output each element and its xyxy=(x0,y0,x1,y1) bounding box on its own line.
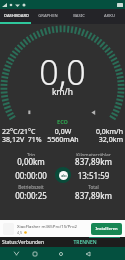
staticText: AKKU xyxy=(104,13,115,19)
staticText: Installieren xyxy=(95,226,118,232)
staticText: 0,0 xyxy=(39,49,86,95)
button[interactable]: AKKU xyxy=(94,9,125,22)
staticText: Total xyxy=(62,184,125,190)
button[interactable]: BASIC xyxy=(63,9,94,22)
staticText: TRENNEN xyxy=(73,239,97,246)
button[interactable]: Home xyxy=(53,247,69,260)
button[interactable]: Recent apps xyxy=(27,247,43,260)
staticText: 22°C/21°C xyxy=(2,127,43,135)
staticText: 5560mAh xyxy=(43,135,83,144)
button[interactable]: GRAPHEN xyxy=(32,9,63,22)
staticText: Trip xyxy=(0,152,62,156)
button[interactable]: DASHBOARD xyxy=(0,9,32,22)
staticText: km/h xyxy=(52,86,73,98)
staticText: 0,0km/h xyxy=(83,127,123,135)
button[interactable]: TRENNEN xyxy=(45,237,125,247)
staticText: 00:00:00 xyxy=(0,170,62,181)
staticText: ECO xyxy=(57,118,68,125)
staticText: 837,89km xyxy=(62,190,125,201)
staticText: 32,0km xyxy=(83,135,123,144)
staticText: Status:Verbunden xyxy=(2,239,45,246)
staticText: Betriebszeit xyxy=(0,184,62,190)
button[interactable]: Back xyxy=(80,247,96,260)
staticText: abc xyxy=(61,174,67,178)
staticText: 4,5 xyxy=(17,230,23,235)
button[interactable]: Installieren xyxy=(91,223,122,235)
staticText: DASHBOARD xyxy=(4,13,29,19)
staticText: GRAPHEN xyxy=(38,13,58,19)
button[interactable]: Hide keyboard xyxy=(8,247,24,260)
staticText: BASIC xyxy=(73,13,85,19)
staticText: 0,00km xyxy=(0,156,62,167)
staticText: 00:00:25 xyxy=(0,190,62,201)
staticText: 13:51:59 xyxy=(62,170,125,181)
staticText: Kilometerzähler xyxy=(62,152,125,156)
staticText: 38,12V 71% xyxy=(2,135,43,144)
staticText: 0,0W xyxy=(43,127,83,135)
staticText: 837,89km xyxy=(62,156,125,167)
staticText: XiaoFlasher m365Pro/1S/Pro2 xyxy=(17,223,91,229)
